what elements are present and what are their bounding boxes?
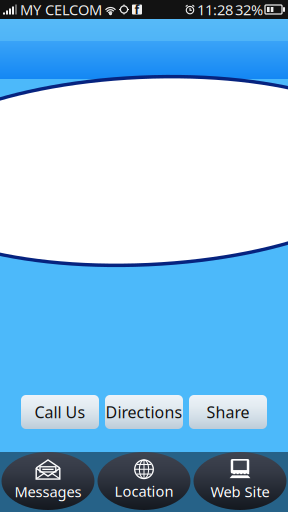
staticText: Messages [14, 482, 81, 501]
staticText: 11:28 [197, 0, 233, 19]
button[interactable]: Location [96, 452, 192, 512]
button[interactable]: Web Site [192, 452, 288, 512]
staticText: MY CELCOM [20, 0, 102, 19]
button[interactable]: Share [189, 395, 267, 429]
staticText: Share [206, 401, 249, 423]
staticText: Call Us [34, 401, 85, 423]
staticText: Web Site [210, 482, 269, 501]
button[interactable]: Call Us [21, 395, 99, 429]
staticText: Location [114, 481, 173, 501]
staticText: f [134, 1, 139, 17]
button[interactable]: Messages [0, 452, 96, 512]
button[interactable]: Directions [105, 395, 183, 429]
staticText: 32% [235, 0, 263, 19]
staticText: Directions [105, 401, 182, 423]
